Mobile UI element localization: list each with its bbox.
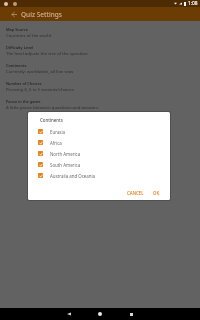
staticText: Map Source [6,27,28,32]
staticText: Eurasia [50,129,66,135]
button[interactable]: Back [63,308,75,320]
staticText: 1:08 [188,0,198,7]
staticText: Continents [6,63,27,68]
button[interactable]: Eurasia [28,126,170,137]
staticText: The level adjusts the size of the questi… [6,50,88,56]
staticText: South America [50,162,81,168]
button[interactable]: Back [7,8,20,21]
button[interactable]: Continents [6,59,195,77]
staticText: Pause in the game [6,99,41,104]
button[interactable]: North America [28,148,170,159]
staticText: Africa [50,140,62,146]
staticText: Difficulty Level [6,45,34,50]
button[interactable]: Map Source [6,23,195,41]
button[interactable]: Home [94,308,106,320]
button[interactable]: Pause in the game [6,95,195,113]
staticText: A little pause between questions and ans… [6,104,99,110]
staticText: OK [153,190,160,196]
button[interactable]: South America [28,159,170,170]
staticText: Countries of the world [6,32,52,38]
staticText: Quiz Settings [21,10,63,19]
staticText: Currently: worldwide, all five seas [6,68,74,74]
button[interactable]: CANCEL [125,188,146,198]
button[interactable]: Number of Choices [6,77,195,95]
staticText: Pressing 4, 6 in 5 variants/choices [6,86,74,92]
button[interactable]: OK [151,188,162,198]
staticText: North America [50,151,81,157]
button[interactable]: Africa [28,137,170,148]
button[interactable]: Difficulty Level [6,41,195,59]
button[interactable]: Australia and Oceania [28,170,170,181]
staticText: CANCEL [127,190,144,196]
staticText: Australia and Oceania [50,173,96,179]
staticText: Continents [40,117,63,123]
button[interactable]: Recent apps [125,308,137,320]
staticText: Number of Choices [6,81,42,86]
